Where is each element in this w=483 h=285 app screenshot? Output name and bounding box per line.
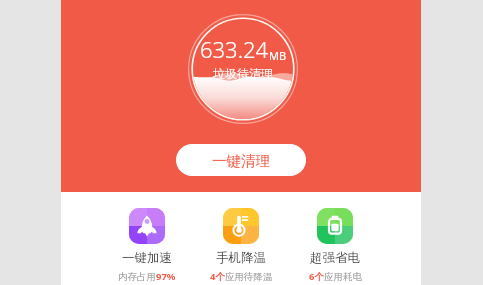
other: 一键加速 bbox=[129, 208, 165, 244]
staticText: MB bbox=[269, 48, 287, 63]
staticText: 手机降温 bbox=[216, 250, 266, 266]
staticText: 一键清理 bbox=[212, 152, 270, 170]
button[interactable]: 一键加速 bbox=[100, 208, 194, 283]
other: 手机降温 bbox=[223, 208, 259, 244]
button[interactable]: 手机降温 bbox=[194, 208, 288, 283]
staticText: 内存占用97% bbox=[118, 270, 176, 283]
staticText: 6个应用耗电 bbox=[309, 270, 362, 283]
button[interactable]: 一键清理 bbox=[176, 144, 306, 176]
staticText: 超强省电 bbox=[310, 250, 360, 266]
button[interactable]: 超强省电 bbox=[288, 208, 382, 283]
staticText: 4个应用待降温 bbox=[210, 270, 273, 283]
staticText: 垃圾待清理 bbox=[213, 66, 273, 81]
other: 超强省电 bbox=[317, 208, 353, 244]
staticText: 633.24 bbox=[200, 34, 269, 64]
staticText: 一键加速 bbox=[122, 250, 172, 266]
